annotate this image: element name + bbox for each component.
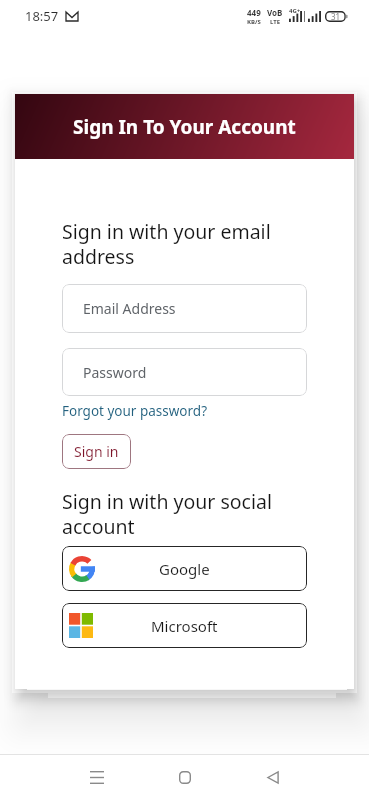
button[interactable]: Forgot your password? <box>62 402 208 420</box>
staticText: 31 <box>331 11 341 22</box>
button[interactable]: Recent apps <box>53 754 141 800</box>
staticText: Sign in with your social account <box>62 488 307 540</box>
staticText: Sign in <box>74 442 119 461</box>
staticText: Google <box>159 559 210 579</box>
staticText: KB/S <box>247 18 261 26</box>
staticText: Sign in with your email address <box>62 218 307 270</box>
button[interactable]: Back <box>229 754 317 800</box>
staticText: Sign In To Your Account <box>73 114 296 140</box>
staticText: Forgot your password? <box>62 402 208 420</box>
button[interactable]: Home <box>141 754 229 800</box>
staticText: Microsoft <box>151 616 218 636</box>
staticText: 4G+ <box>289 7 301 15</box>
button[interactable]: Sign in <box>62 434 131 469</box>
staticText: VoB <box>267 7 283 18</box>
staticText: 449 <box>247 7 261 18</box>
button[interactable]: Google <box>62 546 307 591</box>
button[interactable]: Email Address <box>62 284 307 333</box>
button[interactable]: Microsoft <box>62 603 307 648</box>
staticText: Email Address <box>83 299 176 318</box>
staticText: Password <box>83 363 147 382</box>
button[interactable]: Password <box>62 348 307 396</box>
staticText: LTE <box>270 18 281 26</box>
staticText: 18:57 <box>25 7 59 25</box>
